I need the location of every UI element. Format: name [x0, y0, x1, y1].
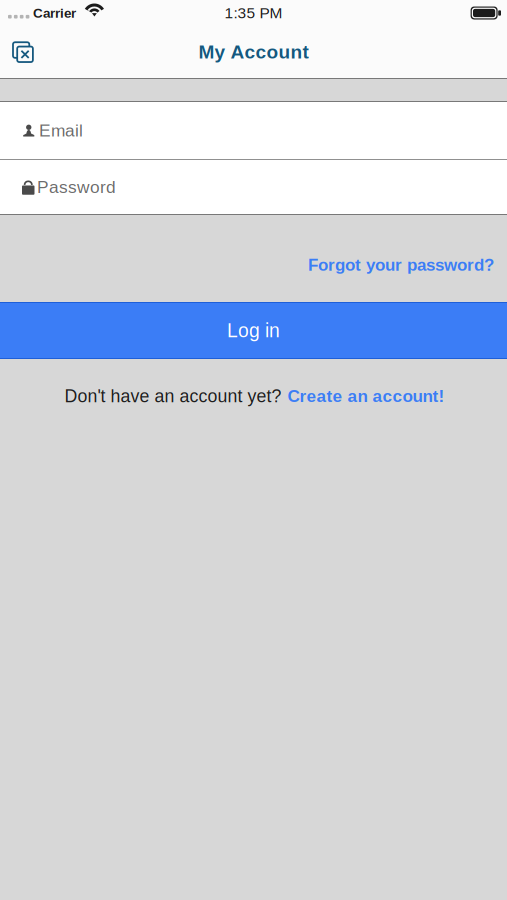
staticText: Carrier [33, 5, 76, 20]
staticText: My Account [198, 41, 308, 63]
staticText: Log in [227, 320, 280, 341]
button[interactable]: Create an account! [281, 377, 444, 414]
button[interactable]: Forgot your password? [295, 215, 507, 301]
staticText: 1:35 PM [224, 4, 282, 22]
staticText: Don't have an account yet? [64, 386, 281, 406]
button[interactable]: Close [0, 26, 45, 78]
button[interactable]: Password [0, 160, 507, 214]
staticText: Create an account! [287, 386, 444, 405]
button[interactable]: Log in [0, 302, 507, 359]
button[interactable]: Email [0, 102, 507, 159]
staticText: Email [39, 121, 83, 140]
staticText: Forgot your password? [308, 255, 494, 274]
staticText: Password [37, 177, 116, 197]
